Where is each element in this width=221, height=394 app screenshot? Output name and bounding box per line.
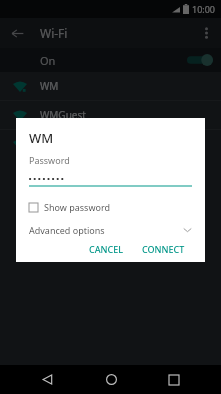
button[interactable]: WM bbox=[0, 72, 221, 100]
button[interactable]: Back bbox=[30, 365, 64, 394]
staticText: Wi-Fi bbox=[40, 25, 68, 41]
staticText: Advanced options bbox=[29, 224, 105, 236]
staticText: On bbox=[40, 53, 56, 68]
button[interactable]: CONNECT bbox=[135, 239, 192, 259]
button[interactable]: Advanced options bbox=[29, 224, 192, 236]
button[interactable]: Show password bbox=[29, 201, 192, 213]
button[interactable]: Recent apps bbox=[157, 365, 191, 394]
button[interactable]: Back bbox=[3, 19, 31, 47]
staticText: CONNECT bbox=[142, 243, 185, 255]
staticText: Office bbox=[40, 137, 68, 151]
staticText: WM bbox=[40, 79, 59, 93]
staticText: 10:00 bbox=[192, 3, 216, 15]
staticText: CANCEL bbox=[89, 243, 124, 255]
button[interactable]: On bbox=[0, 48, 221, 72]
button[interactable]: CANCEL bbox=[82, 239, 131, 259]
staticText: Show password bbox=[44, 201, 110, 213]
staticText: WM bbox=[29, 129, 54, 147]
button[interactable]: Home bbox=[94, 365, 128, 394]
button[interactable]: Office bbox=[0, 130, 221, 158]
staticText: WMGuest bbox=[40, 108, 86, 122]
button[interactable]: WMGuest bbox=[0, 101, 221, 129]
button[interactable]: More options bbox=[193, 20, 219, 46]
staticText: Password bbox=[29, 154, 70, 166]
